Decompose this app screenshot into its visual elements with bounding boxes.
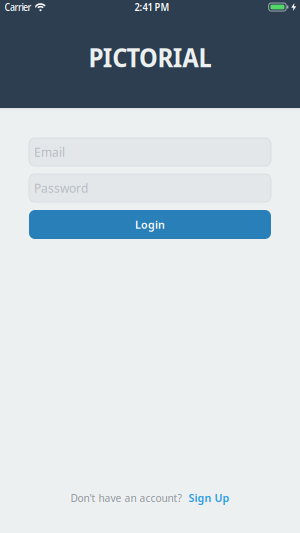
staticText: PICTORIAL (88, 39, 212, 75)
staticText: 2:41 PM (134, 0, 169, 14)
button[interactable]: Email text field (29, 138, 271, 166)
button[interactable]: Login (29, 210, 271, 239)
button[interactable]: Password text field (29, 174, 271, 202)
staticText: Carrier (4, 0, 31, 14)
staticText: Don't have an account? (70, 491, 181, 505)
staticText: Password (34, 180, 88, 196)
staticText: Sign Up (188, 491, 229, 505)
staticText: Login (135, 217, 165, 232)
staticText: Email (34, 144, 65, 160)
button[interactable]: Sign Up (188, 491, 229, 505)
